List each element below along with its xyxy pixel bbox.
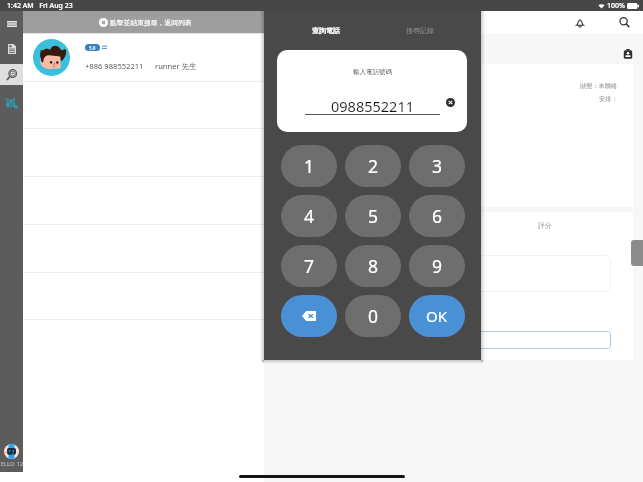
button[interactable]: Search <box>616 14 633 31</box>
button[interactable]: Documents <box>0 36 23 62</box>
button[interactable]: 0 <box>345 295 401 337</box>
button[interactable]: 點擊並結束搜尋，返回列表 <box>23 11 264 33</box>
staticText: 輸入電話號碼 <box>353 68 392 76</box>
staticText: 搜尋記錄 <box>406 26 434 35</box>
button[interactable]: 查詢電話 <box>296 21 356 39</box>
button[interactable]: Clipboard <box>622 48 633 59</box>
button[interactable]: Menu <box>0 11 23 36</box>
button[interactable]: OK <box>409 295 465 337</box>
button[interactable]: 4 <box>281 195 337 237</box>
staticText: 7 <box>304 254 315 278</box>
staticText: HELLO 123 <box>0 460 27 468</box>
staticText: 狀態：未聯絡 <box>580 82 618 90</box>
staticText: 4 <box>304 204 315 228</box>
staticText: 1:42 AM Fri Aug 23 <box>7 1 73 11</box>
staticText: +886 988552211 <box>85 61 144 71</box>
staticText: 點擊並結束搜尋，返回列表 <box>110 18 192 27</box>
button[interactable]: 7 <box>281 245 337 287</box>
button[interactable]: Backspace <box>281 295 337 337</box>
staticText: OK <box>426 306 448 326</box>
staticText: 6 <box>432 204 443 228</box>
button[interactable]: Search <box>0 64 23 85</box>
staticText: 查詢電話 <box>312 26 340 35</box>
button[interactable]: Clear <box>445 97 456 108</box>
staticText: runner 先生 <box>155 61 197 71</box>
button[interactable]: Tools <box>0 85 23 120</box>
button[interactable]: 6 <box>409 195 465 237</box>
staticText: 5.0 <box>89 45 96 51</box>
button[interactable] <box>23 225 264 273</box>
button[interactable]: Notifications <box>571 14 588 31</box>
button[interactable]: 8 <box>345 245 401 287</box>
button[interactable]: 5 <box>345 195 401 237</box>
button[interactable]: 2 <box>345 145 401 187</box>
button[interactable]: 9 <box>409 245 465 287</box>
button[interactable]: 5.0 <box>23 33 264 81</box>
staticText: 0988552211 <box>305 96 440 116</box>
button[interactable]: 搜尋記錄 <box>390 21 450 39</box>
staticText: 0 <box>368 304 379 328</box>
button[interactable] <box>23 81 264 129</box>
staticText: 2 <box>368 154 379 178</box>
staticText: 8 <box>368 254 379 278</box>
staticText: 評分 <box>538 221 552 230</box>
button[interactable]: 3 <box>409 145 465 187</box>
staticText: 5 <box>368 204 379 228</box>
staticText: 3 <box>432 154 443 178</box>
button[interactable]: Account <box>0 435 23 468</box>
button[interactable]: 1 <box>281 145 337 187</box>
staticText: 1 <box>304 154 315 178</box>
button[interactable] <box>23 129 264 177</box>
button[interactable] <box>23 273 264 321</box>
button[interactable] <box>23 177 264 225</box>
staticText: 9 <box>432 254 443 278</box>
staticText: 安排： <box>599 95 618 103</box>
staticText: 100% <box>607 1 625 11</box>
